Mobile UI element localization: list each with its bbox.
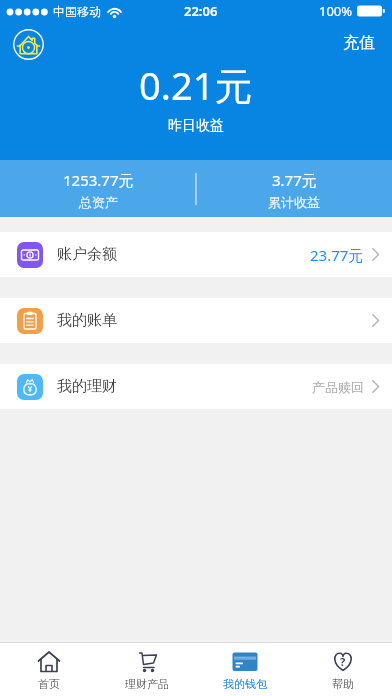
button[interactable]: 理财产品 <box>98 643 196 696</box>
staticText: 我的账单 <box>57 311 117 330</box>
staticText: 累计收益 <box>268 194 320 210</box>
staticText: 22:06 <box>184 2 218 20</box>
staticText: 总资产 <box>79 194 118 210</box>
button[interactable]: 我的账单 <box>0 298 392 343</box>
staticText: ? <box>340 654 346 669</box>
staticText: 我的理财 <box>57 377 117 396</box>
staticText: 产品赎回 <box>312 379 364 395</box>
staticText: 3.77元 <box>272 170 317 190</box>
button[interactable]: ? <box>294 643 392 696</box>
staticText: 1253.77元 <box>63 170 134 190</box>
button[interactable] <box>13 29 44 60</box>
staticText: 帮助 <box>332 677 354 691</box>
staticText: 100% <box>319 2 353 20</box>
button[interactable]: 首页 <box>0 643 98 696</box>
staticText: 昨日收益 <box>168 117 224 135</box>
button[interactable]: 账户余额 <box>0 232 392 277</box>
staticText: 中国移动 <box>53 4 101 19</box>
staticText: 首页 <box>38 677 60 691</box>
button[interactable]: 我的钱包 <box>196 643 294 696</box>
staticText: 充值 <box>343 33 375 53</box>
staticText: 账户余额 <box>57 245 117 264</box>
button[interactable]: 我的理财 <box>0 364 392 409</box>
staticText: 0.21元 <box>139 59 253 111</box>
staticText: 23.77元 <box>310 245 364 265</box>
button[interactable]: 充值 <box>343 33 375 53</box>
staticText: 我的钱包 <box>223 677 267 691</box>
staticText: 理财产品 <box>125 677 169 691</box>
